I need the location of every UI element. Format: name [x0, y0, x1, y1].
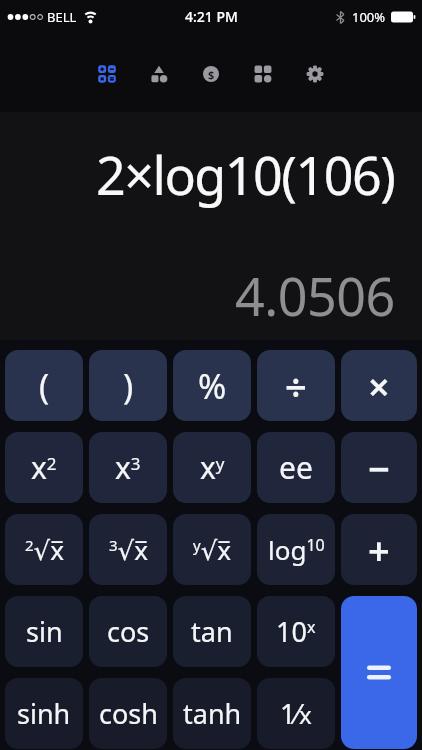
button[interactable]	[133, 50, 185, 98]
staticText: tanh	[183, 695, 242, 732]
staticText: sin	[26, 613, 63, 650]
button[interactable]: 2√x̅	[5, 514, 83, 585]
staticText: 100%	[352, 8, 386, 26]
button[interactable]: sinh	[5, 678, 83, 749]
staticText: +	[368, 524, 390, 576]
staticText: −	[368, 442, 390, 494]
button[interactable]: ×	[341, 350, 417, 421]
staticText: ÷	[285, 360, 307, 412]
button[interactable]: 3√x̅	[89, 514, 167, 585]
staticText: 4.0506	[235, 260, 395, 331]
staticText: %	[198, 363, 227, 409]
staticText: tan	[191, 613, 233, 650]
staticText: cosh	[99, 695, 158, 732]
button[interactable]: ÷	[257, 350, 335, 421]
staticText: 1⁄x	[280, 695, 312, 732]
button[interactable]: )	[89, 350, 167, 421]
staticText: xy	[200, 447, 225, 488]
staticText: ee	[279, 447, 313, 488]
button[interactable]: 10x	[257, 596, 335, 667]
staticText: ×	[368, 360, 390, 412]
button[interactable]: cosh	[89, 678, 167, 749]
button[interactable]: ee	[257, 432, 335, 503]
button[interactable]: %	[173, 350, 251, 421]
button[interactable]: cos	[89, 596, 167, 667]
staticText: x3	[115, 447, 141, 488]
button[interactable]: (	[5, 350, 83, 421]
staticText: )	[123, 363, 134, 409]
staticText: 2√x̅	[25, 532, 64, 567]
button[interactable]: log10	[257, 514, 335, 585]
staticText: 4:21 PM	[185, 7, 238, 26]
staticText: sinh	[17, 695, 71, 732]
button[interactable]: +	[341, 514, 417, 585]
staticText: 2×log10(106)	[96, 139, 395, 210]
staticText: BELL	[47, 8, 77, 26]
staticText: log10	[268, 532, 325, 567]
button[interactable]: 1⁄x	[257, 678, 335, 749]
button[interactable]: xy	[173, 432, 251, 503]
button[interactable]: x3	[89, 432, 167, 503]
staticText: 10x	[276, 613, 316, 650]
button[interactable]	[81, 50, 133, 98]
staticText: (	[39, 363, 50, 409]
button[interactable]: sin	[5, 596, 83, 667]
button[interactable]	[341, 596, 417, 749]
button[interactable]: tan	[173, 596, 251, 667]
button[interactable]: x2	[5, 432, 83, 503]
button[interactable]: y√x̅	[173, 514, 251, 585]
staticText: x2	[31, 447, 57, 488]
staticText: $	[208, 67, 215, 82]
staticText: 3√x̅	[109, 532, 148, 567]
button[interactable]	[237, 50, 289, 98]
button[interactable]: −	[341, 432, 417, 503]
button[interactable]: $	[185, 50, 237, 98]
button[interactable]	[289, 50, 341, 98]
button[interactable]: tanh	[173, 678, 251, 749]
staticText: cos	[107, 613, 150, 650]
staticText: y√x̅	[193, 532, 231, 567]
